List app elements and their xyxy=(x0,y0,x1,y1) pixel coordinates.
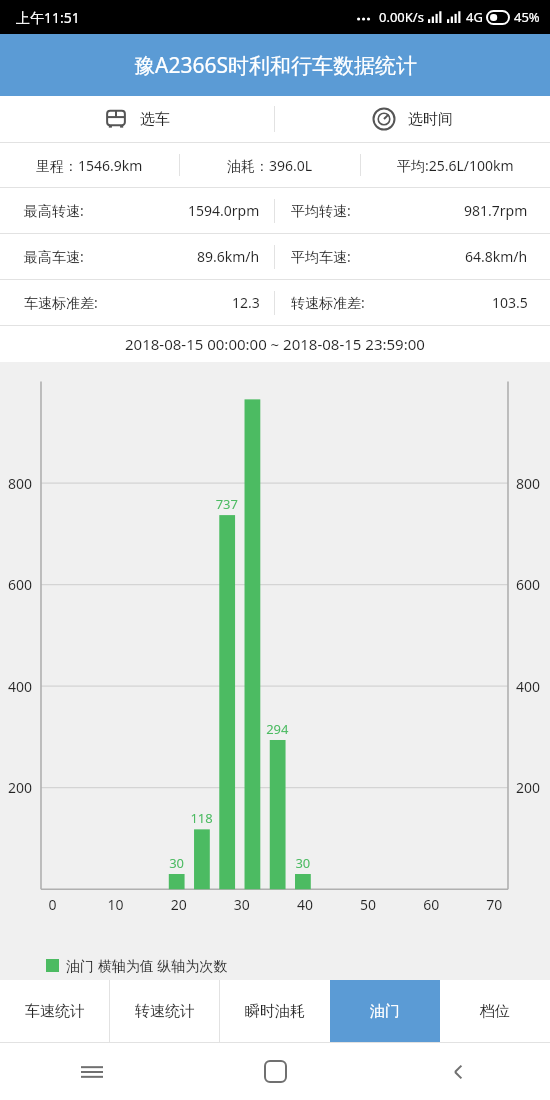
staticText: 档位 xyxy=(480,1002,510,1021)
other: Select vehicle xyxy=(104,107,128,131)
staticText: 选车 xyxy=(140,110,170,129)
button[interactable]: Home xyxy=(184,1043,367,1100)
staticText: 车速统计 xyxy=(25,1002,85,1021)
staticText: 最高车速: xyxy=(24,247,84,266)
staticText: 平均转速: xyxy=(291,201,351,220)
staticText: 45% xyxy=(514,8,540,26)
button[interactable]: 车速统计 xyxy=(0,980,109,1042)
staticText: 油耗：396.0L xyxy=(227,156,313,175)
staticText: 上午11:51 xyxy=(16,8,80,27)
staticText: 981.7rpm xyxy=(464,201,528,220)
button[interactable]: 转速统计 xyxy=(110,980,219,1042)
button[interactable]: Select vehicle xyxy=(0,96,274,142)
staticText: 油门 横轴为值 纵轴为次数 xyxy=(66,956,228,975)
staticText: 12.3 xyxy=(232,293,260,312)
staticText: 油门 xyxy=(370,1002,400,1021)
staticText: 89.6km/h xyxy=(197,247,260,266)
staticText: 转速统计 xyxy=(135,1002,195,1021)
button[interactable]: Menu xyxy=(0,1043,184,1100)
staticText: 平均:25.6L/100km xyxy=(397,156,514,175)
staticText: 转速标准差: xyxy=(291,293,365,312)
staticText: 豫A2366S时利和行车数据统计 xyxy=(134,51,417,80)
staticText: 4G xyxy=(466,8,483,26)
staticText: 最高转速: xyxy=(24,201,84,220)
button[interactable]: 油门 xyxy=(330,980,440,1042)
button[interactable]: Select time xyxy=(275,96,550,142)
staticText: 0.00K/s xyxy=(379,8,424,26)
staticText: 64.8km/h xyxy=(465,247,528,266)
staticText: 2018-08-15 00:00:00 ~ 2018-08-15 23:59:0… xyxy=(125,334,425,354)
staticText: 1594.0rpm xyxy=(188,201,260,220)
staticText: 瞬时油耗 xyxy=(245,1002,305,1021)
other: Select time xyxy=(372,107,396,131)
staticText: 里程：1546.9km xyxy=(36,156,143,175)
staticText: 选时间 xyxy=(408,110,453,129)
button[interactable]: 档位 xyxy=(440,980,550,1042)
staticText: 平均车速: xyxy=(291,247,351,266)
staticText: 103.5 xyxy=(492,293,528,312)
button[interactable]: Back xyxy=(367,1043,550,1100)
button[interactable]: 瞬时油耗 xyxy=(220,980,330,1042)
staticText: 车速标准差: xyxy=(24,293,98,312)
